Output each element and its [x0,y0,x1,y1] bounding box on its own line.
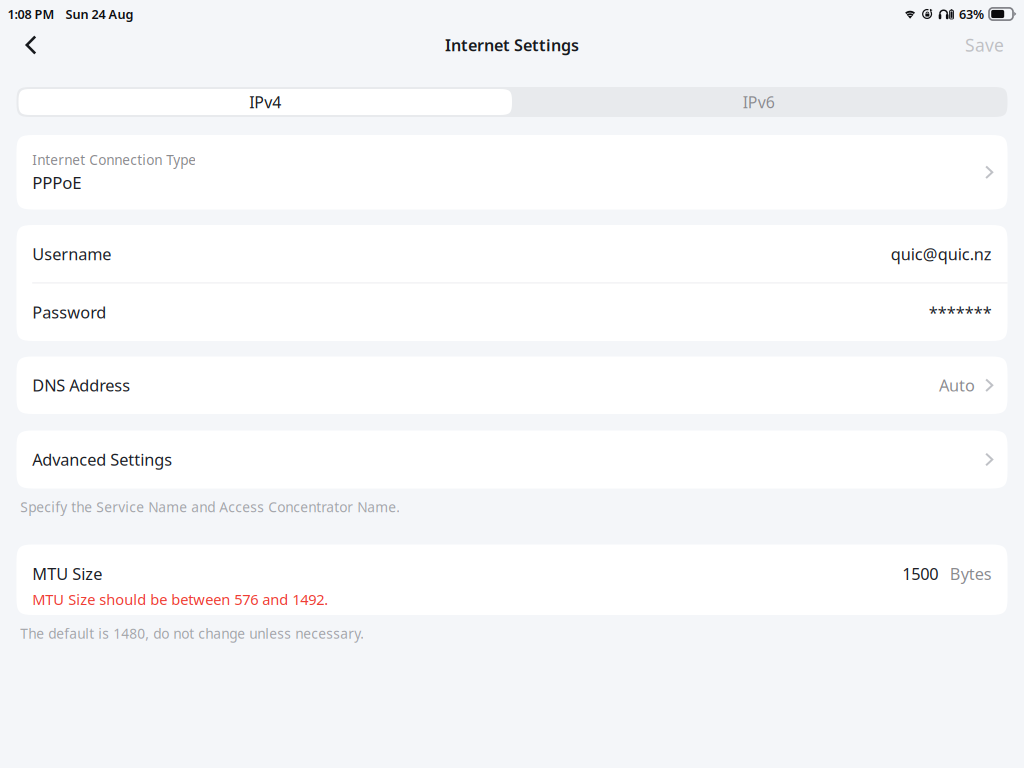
button[interactable]: Advanced Settings [16,430,1007,488]
button[interactable]: IPv4 [18,89,512,115]
staticText: Bytes [950,562,992,585]
staticText: 1:08 PM [7,5,54,23]
button[interactable]: Save [958,27,1004,63]
staticText: ******* [929,301,992,323]
staticText: The default is 1480, do not change unles… [20,624,364,643]
staticText: Internet Connection Type [32,150,196,169]
button[interactable]: Password [16,283,1007,341]
button[interactable]: Username [16,225,1007,283]
staticText: Specify the Service Name and Access Conc… [20,497,400,516]
staticText: Sun 24 Aug [65,5,133,23]
button[interactable]: IPv6 [512,89,1005,115]
staticText: Auto [939,374,975,396]
staticText: quic@quic.nz [891,243,992,265]
staticText: 63% [959,5,984,23]
staticText: Save [965,33,1004,57]
staticText: Internet Settings [445,34,579,56]
staticText: MTU Size should be between 576 and 1492. [32,589,328,609]
staticText: Advanced Settings [32,448,172,471]
staticText: MTU Size [32,562,102,585]
staticText: 1500 [902,562,938,585]
button[interactable]: DNS Address [16,356,1007,414]
staticText: Password [32,301,106,323]
staticText: DNS Address [32,374,130,396]
staticText: Username [32,243,111,265]
staticText: IPv4 [249,91,281,113]
button[interactable]: Back [10,27,52,63]
staticText: IPv6 [743,91,775,113]
staticText: PPPoE [32,171,81,194]
button[interactable]: Internet Connection Type [16,135,1007,209]
